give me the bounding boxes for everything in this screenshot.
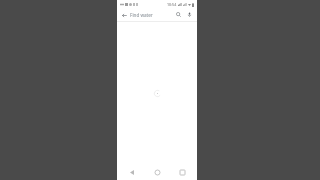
button[interactable]: Back	[122, 164, 142, 180]
button[interactable]: Back	[119, 10, 129, 20]
staticText: Find water	[130, 12, 153, 18]
button[interactable]: Search	[173, 9, 184, 20]
button[interactable]: Recent apps	[172, 164, 192, 180]
button[interactable]: Home	[147, 164, 167, 180]
staticText: 10:54	[167, 2, 177, 7]
button[interactable]: Voice search	[184, 9, 195, 20]
button[interactable]: Find water	[129, 8, 173, 21]
